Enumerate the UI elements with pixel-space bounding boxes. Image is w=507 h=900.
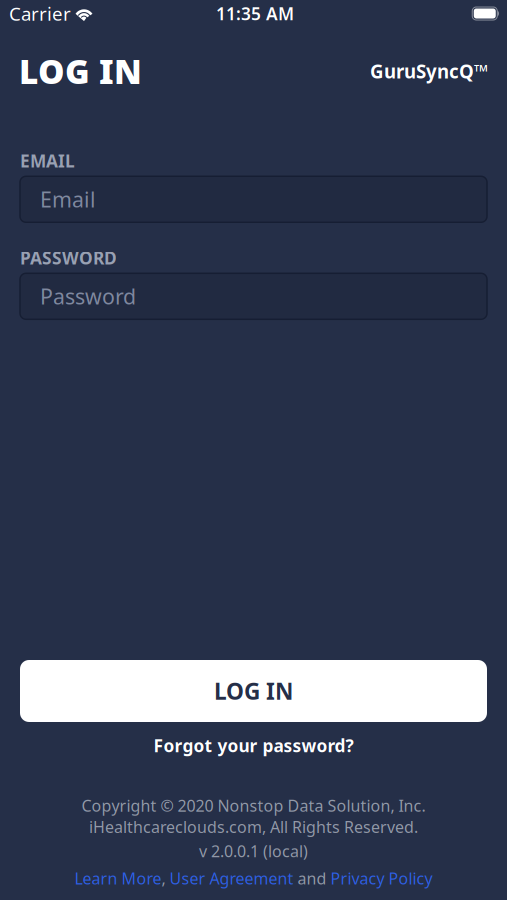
staticText: Learn More bbox=[74, 868, 161, 889]
staticText: LOG IN bbox=[214, 676, 293, 706]
staticText: Privacy Policy bbox=[330, 868, 432, 889]
staticText: iHealthcareclouds.com, All Rights Reserv… bbox=[89, 816, 418, 837]
button[interactable]: Learn More bbox=[74, 868, 161, 889]
button[interactable]: LOG IN bbox=[20, 660, 487, 722]
staticText: EMAIL bbox=[20, 149, 75, 172]
staticText: User Agreement bbox=[169, 868, 293, 889]
staticText: PASSWORD bbox=[20, 246, 117, 269]
button[interactable]: Password bbox=[20, 273, 487, 319]
staticText: GuruSyncQ™ bbox=[370, 59, 488, 83]
staticText: , bbox=[161, 868, 169, 889]
staticText: and bbox=[293, 868, 330, 889]
button[interactable]: Email bbox=[20, 176, 487, 222]
button[interactable]: Privacy Policy bbox=[330, 868, 432, 889]
staticText: Forgot your password? bbox=[153, 734, 353, 757]
button[interactable]: User Agreement bbox=[169, 868, 293, 889]
staticText: Email bbox=[40, 185, 96, 213]
staticText: 11:35 AM bbox=[216, 2, 294, 25]
button[interactable]: Forgot your password? bbox=[153, 734, 353, 757]
staticText: Carrier bbox=[9, 1, 71, 26]
staticText: LOG IN bbox=[19, 49, 142, 93]
staticText: v 2.0.0.1 (local) bbox=[199, 840, 308, 862]
staticText: Copyright © 2020 Nonstop Data Solution, … bbox=[81, 795, 425, 816]
staticText: Password bbox=[40, 282, 136, 310]
